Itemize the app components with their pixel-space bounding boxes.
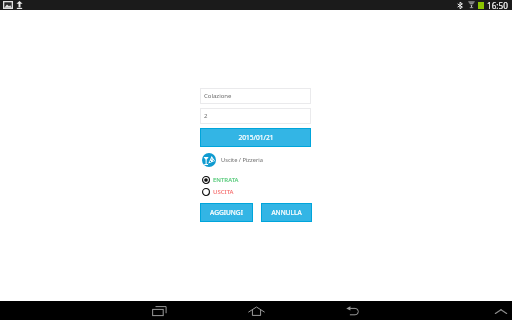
button[interactable]: Home	[242, 301, 270, 320]
staticText: 2015/01/21	[238, 133, 274, 142]
button[interactable]: Expand	[492, 301, 510, 320]
staticText: Colazione	[204, 92, 232, 100]
button[interactable]: AGGIUNGI	[200, 203, 253, 222]
staticText: USCITA	[213, 188, 234, 196]
button[interactable]: Uscite / Pizzeria	[200, 152, 311, 167]
button[interactable]: ENTRATA	[200, 175, 311, 184]
staticText: 2	[204, 112, 208, 120]
staticText: ANNULLA	[271, 208, 302, 217]
button[interactable]: 2015/01/21	[200, 128, 311, 147]
button[interactable]: Back	[338, 301, 366, 320]
staticText: AGGIUNGI	[210, 208, 243, 217]
button[interactable]: ANNULLA	[261, 203, 312, 222]
button[interactable]: Recent apps	[146, 301, 174, 320]
button[interactable]: 2	[200, 108, 311, 124]
staticText: Uscite / Pizzeria	[221, 156, 263, 164]
staticText: ENTRATA	[213, 176, 239, 184]
button[interactable]: USCITA	[200, 187, 311, 196]
button[interactable]: Colazione	[200, 88, 311, 104]
staticText: 16:50	[487, 0, 508, 10]
